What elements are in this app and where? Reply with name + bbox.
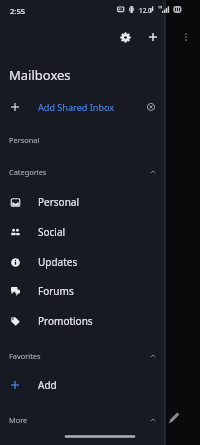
button[interactable]: Forums bbox=[0, 276, 166, 306]
staticText: Categories bbox=[9, 167, 47, 177]
button[interactable]: Settings bbox=[113, 25, 137, 49]
staticText: 2:55 bbox=[10, 6, 26, 16]
button[interactable]: Add bbox=[0, 373, 166, 396]
staticText: Favorites bbox=[9, 351, 41, 361]
button[interactable]: Social bbox=[0, 217, 166, 247]
button[interactable]: Personal bbox=[0, 127, 166, 152]
staticText: Social bbox=[38, 225, 66, 239]
button[interactable]: More bbox=[0, 407, 166, 432]
button[interactable]: Add Shared Inbox bbox=[0, 95, 166, 118]
button[interactable]: Favorites bbox=[0, 343, 166, 368]
staticText: Promotions bbox=[38, 314, 93, 328]
staticText: Updates bbox=[38, 255, 78, 269]
button[interactable]: Compose bbox=[160, 404, 188, 432]
staticText: Add bbox=[38, 378, 57, 392]
button[interactable]: Updates bbox=[0, 247, 166, 277]
button[interactable]: More options bbox=[175, 26, 197, 48]
staticText: Personal bbox=[9, 135, 40, 145]
staticText: Personal bbox=[38, 195, 80, 209]
staticText: Add Shared Inbox bbox=[38, 101, 115, 113]
staticText: Mailboxes bbox=[9, 66, 71, 84]
button[interactable]: Personal bbox=[0, 187, 166, 217]
staticText: Forums bbox=[38, 284, 74, 298]
button[interactable]: Add mailbox bbox=[141, 25, 165, 49]
button[interactable]: Categories bbox=[0, 159, 166, 184]
staticText: 12.0 bbox=[139, 6, 152, 15]
staticText: More bbox=[9, 415, 28, 425]
button[interactable]: Promotions bbox=[0, 306, 166, 336]
